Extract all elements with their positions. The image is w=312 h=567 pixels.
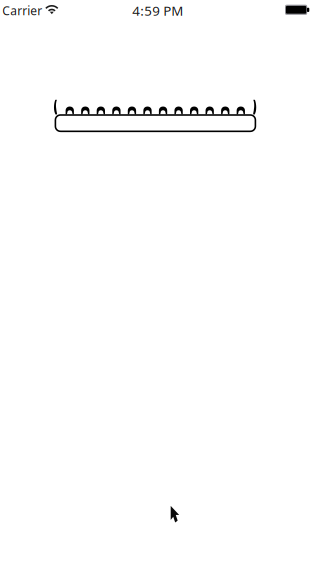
staticText: Carrier — [2, 3, 42, 19]
staticText: 4:59 PM — [132, 2, 183, 19]
